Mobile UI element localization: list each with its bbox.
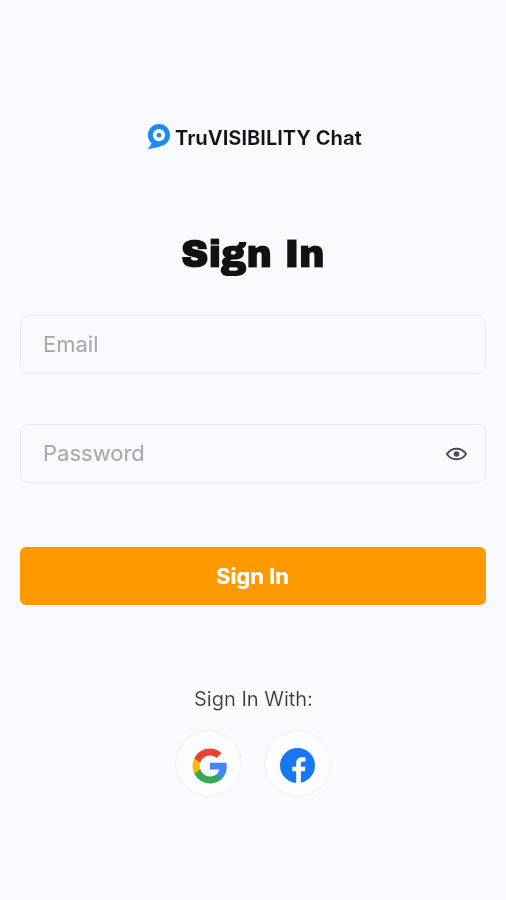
staticText: Sign In With:	[194, 687, 313, 711]
button[interactable]: Email	[20, 315, 486, 374]
button[interactable]: Sign in with Facebook	[264, 730, 331, 797]
staticText: TruVISIBILITY Chat	[175, 126, 362, 150]
button[interactable]: Sign In	[20, 547, 486, 605]
button[interactable]: Sign in with Google	[175, 730, 242, 797]
button[interactable]: Show password	[436, 433, 477, 474]
staticText: Email	[43, 331, 99, 358]
button[interactable]: Password	[20, 424, 486, 483]
staticText: Sign In	[216, 563, 290, 590]
staticText: Sign In	[181, 234, 325, 275]
staticText: Password	[43, 440, 145, 467]
